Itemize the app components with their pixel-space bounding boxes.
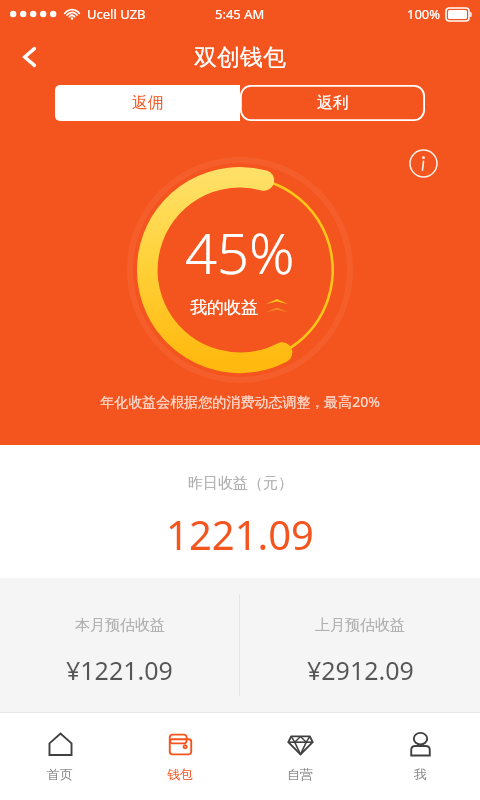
button[interactable]: 上月预估收益 xyxy=(240,578,480,712)
staticText: 返佣 xyxy=(132,93,164,113)
button[interactable]: Back xyxy=(8,35,52,79)
staticText: 45% xyxy=(185,214,295,290)
staticText: 昨日收益（元） xyxy=(188,474,293,493)
button[interactable]: 首页 xyxy=(0,712,120,800)
staticText: 5:45 AM xyxy=(215,5,265,23)
staticText: 100% xyxy=(407,5,441,23)
staticText: 钱包 xyxy=(167,766,193,782)
button[interactable]: 自营 xyxy=(240,712,360,800)
staticText: 自营 xyxy=(287,766,313,782)
staticText: ¥1221.09 xyxy=(66,653,173,687)
staticText: 本月预估收益 xyxy=(75,616,165,635)
staticText: 首页 xyxy=(47,766,73,782)
staticText: 双创钱包 xyxy=(194,43,286,72)
staticText: 我 xyxy=(414,766,427,782)
button[interactable]: 返利 xyxy=(240,85,425,121)
button[interactable]: 返佣 xyxy=(55,85,240,121)
button[interactable]: 本月预估收益 xyxy=(0,578,239,712)
staticText: 1221.09 xyxy=(166,507,314,561)
staticText: 年化收益会根据您的消费动态调整，最高20% xyxy=(100,392,380,411)
staticText: Ucell UZB xyxy=(87,5,146,23)
staticText: ¥2912.09 xyxy=(307,653,414,687)
button[interactable]: 我 xyxy=(360,712,480,800)
staticText: 返利 xyxy=(317,93,349,113)
staticText: 我的收益 xyxy=(190,297,258,318)
staticText: 上月预估收益 xyxy=(315,616,405,635)
button[interactable]: Information xyxy=(403,143,443,183)
button[interactable]: 钱包 xyxy=(120,712,240,800)
